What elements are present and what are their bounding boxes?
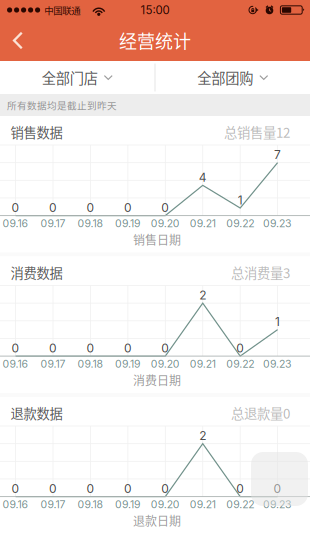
staticText: 0 (12, 481, 20, 496)
staticText: 销售数据 (10, 122, 62, 142)
button[interactable]: 全部门店 (0, 61, 154, 94)
staticText: 0 (49, 481, 57, 496)
staticText: 全部团购 (197, 67, 253, 88)
staticText: 消费数据 (10, 263, 62, 282)
staticText: 09.21 (190, 357, 216, 370)
staticText: 09.22 (226, 357, 254, 370)
staticText: 2 (199, 288, 206, 302)
staticText: 中国联通 (44, 3, 80, 17)
staticText: 0 (124, 341, 132, 355)
staticText: 09.22 (226, 498, 254, 511)
staticText: 0 (161, 481, 169, 496)
staticText: 09.18 (77, 357, 103, 370)
staticText: 总消费量3 (231, 263, 290, 282)
staticText: 09.17 (40, 217, 65, 230)
staticText: 0 (161, 200, 169, 215)
staticText: 0 (49, 341, 57, 355)
staticText: 所有数据均是截止到昨天 (7, 98, 117, 112)
staticText: 0 (86, 341, 94, 355)
staticText: 0 (124, 481, 132, 496)
staticText: 0 (86, 200, 94, 215)
staticText: 0 (86, 481, 94, 496)
staticText: 09.19 (115, 217, 141, 230)
staticText: 0 (236, 341, 244, 355)
staticText: 0 (274, 481, 282, 496)
staticText: 09.21 (190, 217, 216, 230)
staticText: 消费日期 (133, 371, 181, 389)
staticText: 09.22 (226, 217, 254, 230)
staticText: 09.23 (263, 498, 292, 511)
staticText: 0 (12, 341, 20, 355)
staticText: 1 (275, 314, 280, 329)
staticText: 09.21 (190, 498, 216, 511)
staticText: 总退款量0 (231, 403, 290, 423)
staticText: 09.17 (40, 498, 65, 511)
staticText: 销售日期 (133, 231, 181, 248)
staticText: 09.18 (77, 498, 103, 511)
staticText: 0 (236, 481, 244, 496)
staticText: 09.19 (115, 357, 141, 370)
staticText: 0 (124, 200, 132, 215)
staticText: 09.16 (3, 498, 29, 511)
staticText: 0 (161, 341, 169, 355)
staticText: 09.23 (263, 217, 292, 230)
staticText: 09.16 (3, 357, 29, 370)
staticText: 15:00 (140, 3, 169, 17)
staticText: 2 (199, 428, 206, 443)
staticText: 09.23 (263, 357, 292, 370)
staticText: 总销售量12 (224, 122, 290, 142)
button[interactable]: 返回 (0, 20, 36, 61)
staticText: 09.19 (115, 498, 141, 511)
staticText: 退款日期 (133, 512, 181, 529)
staticText: 1 (238, 193, 243, 207)
staticText: 7 (274, 147, 281, 162)
staticText: 09.18 (77, 217, 103, 230)
button[interactable]: 全部团购 (155, 61, 310, 94)
staticText: 09.20 (151, 357, 180, 370)
staticText: 0 (49, 200, 57, 215)
staticText: 09.20 (151, 217, 180, 230)
staticText: 经营统计 (119, 27, 191, 54)
staticText: 全部门店 (42, 67, 98, 88)
staticText: 4 (199, 170, 207, 185)
staticText: 退款数据 (10, 403, 62, 423)
staticText: 09.20 (151, 498, 180, 511)
staticText: 09.17 (40, 357, 65, 370)
staticText: 09.16 (3, 217, 29, 230)
staticText: 0 (12, 200, 20, 215)
